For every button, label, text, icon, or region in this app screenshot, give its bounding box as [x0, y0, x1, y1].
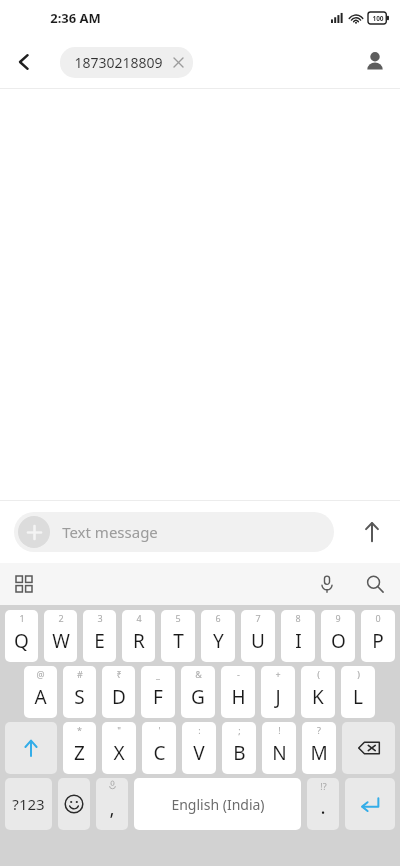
- staticText: 1: [19, 612, 25, 624]
- staticText: R: [133, 628, 145, 654]
- button[interactable]: #: [63, 666, 96, 718]
- button[interactable]: !: [262, 722, 296, 774]
- staticText: H: [231, 684, 246, 710]
- staticText: C: [153, 740, 166, 766]
- button[interactable]: English (India): [134, 778, 301, 830]
- staticText: ,: [109, 795, 115, 821]
- staticText: Z: [74, 740, 85, 766]
- staticText: W: [52, 628, 70, 654]
- button[interactable]: 4: [122, 610, 155, 662]
- button[interactable]: Shift: [5, 722, 57, 774]
- button[interactable]: Keyboard menu: [0, 563, 48, 605]
- staticText: !: [278, 724, 281, 736]
- staticText: &: [195, 668, 202, 680]
- staticText: 9: [335, 612, 341, 624]
- staticText: (: [317, 668, 320, 680]
- staticText: ?123: [12, 794, 45, 814]
- button[interactable]: 2: [44, 610, 77, 662]
- button[interactable]: 7: [241, 610, 275, 662]
- staticText: 100: [372, 14, 384, 23]
- button[interactable]: 6: [201, 610, 235, 662]
- staticText: M: [310, 740, 328, 766]
- staticText: G: [191, 684, 205, 710]
- staticText: !?: [320, 780, 327, 792]
- staticText: :: [198, 724, 201, 736]
- staticText: Text message: [62, 522, 158, 542]
- button[interactable]: 1: [5, 610, 38, 662]
- button[interactable]: Add attachment: [14, 512, 334, 552]
- staticText: N: [272, 740, 287, 766]
- button[interactable]: ?123: [5, 778, 52, 830]
- button[interactable]: Contact details: [350, 36, 400, 88]
- staticText: 2:36 AM: [50, 9, 101, 27]
- staticText: O: [331, 628, 346, 654]
- button[interactable]: Backspace: [342, 722, 395, 774]
- staticText: 6: [215, 612, 221, 624]
- button[interactable]: _: [141, 666, 175, 718]
- staticText: 2: [58, 612, 64, 624]
- staticText: #: [77, 668, 83, 680]
- button[interactable]: ₹: [102, 666, 135, 718]
- staticText: ;: [238, 724, 241, 736]
- staticText: ': [158, 724, 161, 736]
- button[interactable]: ): [341, 666, 375, 718]
- staticText: _: [156, 668, 160, 680]
- staticText: E: [94, 628, 105, 654]
- button[interactable]: +: [261, 666, 295, 718]
- staticText: @: [36, 668, 45, 680]
- staticText: ": [117, 724, 121, 736]
- staticText: L: [353, 684, 363, 710]
- staticText: 7: [255, 612, 261, 624]
- staticText: J: [275, 684, 281, 710]
- staticText: D: [112, 684, 126, 710]
- button[interactable]: (: [301, 666, 335, 718]
- staticText: P: [372, 628, 384, 654]
- staticText: S: [74, 684, 85, 710]
- staticText: B: [233, 740, 246, 766]
- button[interactable]: 3: [83, 610, 116, 662]
- button[interactable]: Voice input: [304, 563, 350, 605]
- button[interactable]: &: [181, 666, 215, 718]
- staticText: 4: [136, 612, 142, 624]
- staticText: I: [295, 628, 302, 654]
- staticText: Y: [213, 628, 224, 654]
- button[interactable]: @: [24, 666, 57, 718]
- staticText: -: [237, 668, 240, 680]
- staticText: 18730218809: [74, 53, 163, 72]
- staticText: 8: [295, 612, 301, 624]
- staticText: 5: [175, 612, 181, 624]
- button[interactable]: 8: [281, 610, 315, 662]
- button[interactable]: Add attachment: [18, 516, 50, 548]
- button[interactable]: ?: [302, 722, 336, 774]
- staticText: .: [320, 794, 326, 820]
- staticText: A: [34, 684, 47, 710]
- button[interactable]: 5: [161, 610, 195, 662]
- button[interactable]: ': [142, 722, 176, 774]
- button[interactable]: Send: [344, 501, 400, 563]
- button[interactable]: ": [102, 722, 136, 774]
- staticText: *: [77, 724, 82, 736]
- button[interactable]: Emoji: [58, 778, 90, 830]
- button[interactable]: ;: [222, 722, 256, 774]
- button[interactable]: 0: [361, 610, 395, 662]
- staticText: K: [312, 684, 324, 710]
- button[interactable]: -: [221, 666, 255, 718]
- staticText: English (India): [171, 795, 265, 814]
- staticText: X: [113, 740, 125, 766]
- staticText: Q: [14, 628, 29, 654]
- staticText: ₹: [116, 668, 122, 680]
- staticText: T: [173, 628, 184, 654]
- staticText: F: [153, 684, 163, 710]
- button[interactable]: 18730218809: [60, 47, 193, 78]
- button[interactable]: Enter: [345, 778, 395, 830]
- button[interactable]: :: [182, 722, 216, 774]
- button[interactable]: ,: [96, 778, 128, 830]
- button[interactable]: !?: [307, 778, 339, 830]
- button[interactable]: 9: [321, 610, 355, 662]
- staticText: ): [357, 668, 360, 680]
- button[interactable]: Back: [0, 36, 48, 88]
- staticText: U: [251, 628, 265, 654]
- button[interactable]: Search: [350, 563, 400, 605]
- staticText: V: [193, 740, 205, 766]
- button[interactable]: *: [63, 722, 96, 774]
